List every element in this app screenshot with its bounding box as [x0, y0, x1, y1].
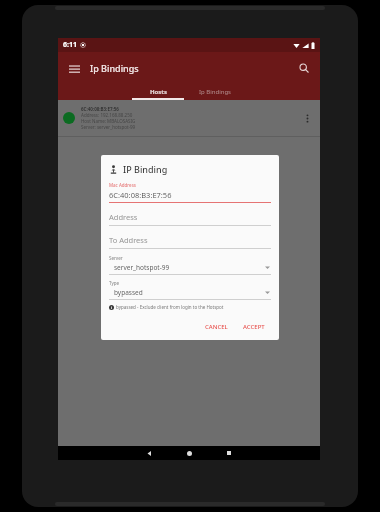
- staticText: server_hotspot-99: [114, 263, 170, 272]
- button[interactable]: ACCEPT: [237, 320, 271, 334]
- button[interactable]: More options: [299, 110, 315, 126]
- staticText: Ip Bindings: [199, 88, 231, 96]
- button[interactable]: server_hotspot-99: [109, 261, 271, 275]
- staticText: bypassed - Exclude client from login to …: [116, 304, 224, 310]
- button[interactable]: Recent apps: [209, 446, 249, 460]
- staticText: Type: [109, 280, 120, 286]
- staticText: CANCEL: [205, 323, 228, 331]
- staticText: Server: server_hotspot-99: [81, 124, 136, 130]
- staticText: 6:11: [63, 40, 77, 50]
- staticText: Address: [109, 212, 138, 222]
- staticText: Mac Address: [109, 182, 136, 188]
- staticText: Ip Bindings: [90, 62, 139, 74]
- staticText: ACCEPT: [243, 323, 265, 331]
- button[interactable]: 6C:40:08:B3:E7:56: [58, 100, 320, 136]
- staticText: 6C:40:08:B3:E7:56: [109, 190, 172, 200]
- staticText: Host Name: MBALOSASIG: [81, 118, 136, 124]
- staticText: Server: [109, 255, 123, 261]
- staticText: Address: 192.168.88.250: [81, 112, 133, 118]
- button[interactable]: Back: [129, 446, 169, 460]
- button[interactable]: Open navigation menu: [62, 56, 86, 80]
- staticText: 6C:40:08:B3:E7:56: [81, 106, 119, 112]
- staticText: IP Binding: [123, 163, 168, 175]
- button[interactable]: bypassed: [109, 286, 271, 300]
- button[interactable]: Ip Bindings: [184, 84, 246, 100]
- button[interactable]: Hosts: [132, 84, 184, 100]
- button[interactable]: CANCEL: [199, 320, 234, 334]
- button[interactable]: Search: [292, 56, 316, 80]
- staticText: bypassed: [114, 288, 143, 297]
- button[interactable]: Home: [169, 446, 209, 460]
- staticText: To Address: [109, 235, 148, 245]
- staticText: Hosts: [150, 88, 167, 96]
